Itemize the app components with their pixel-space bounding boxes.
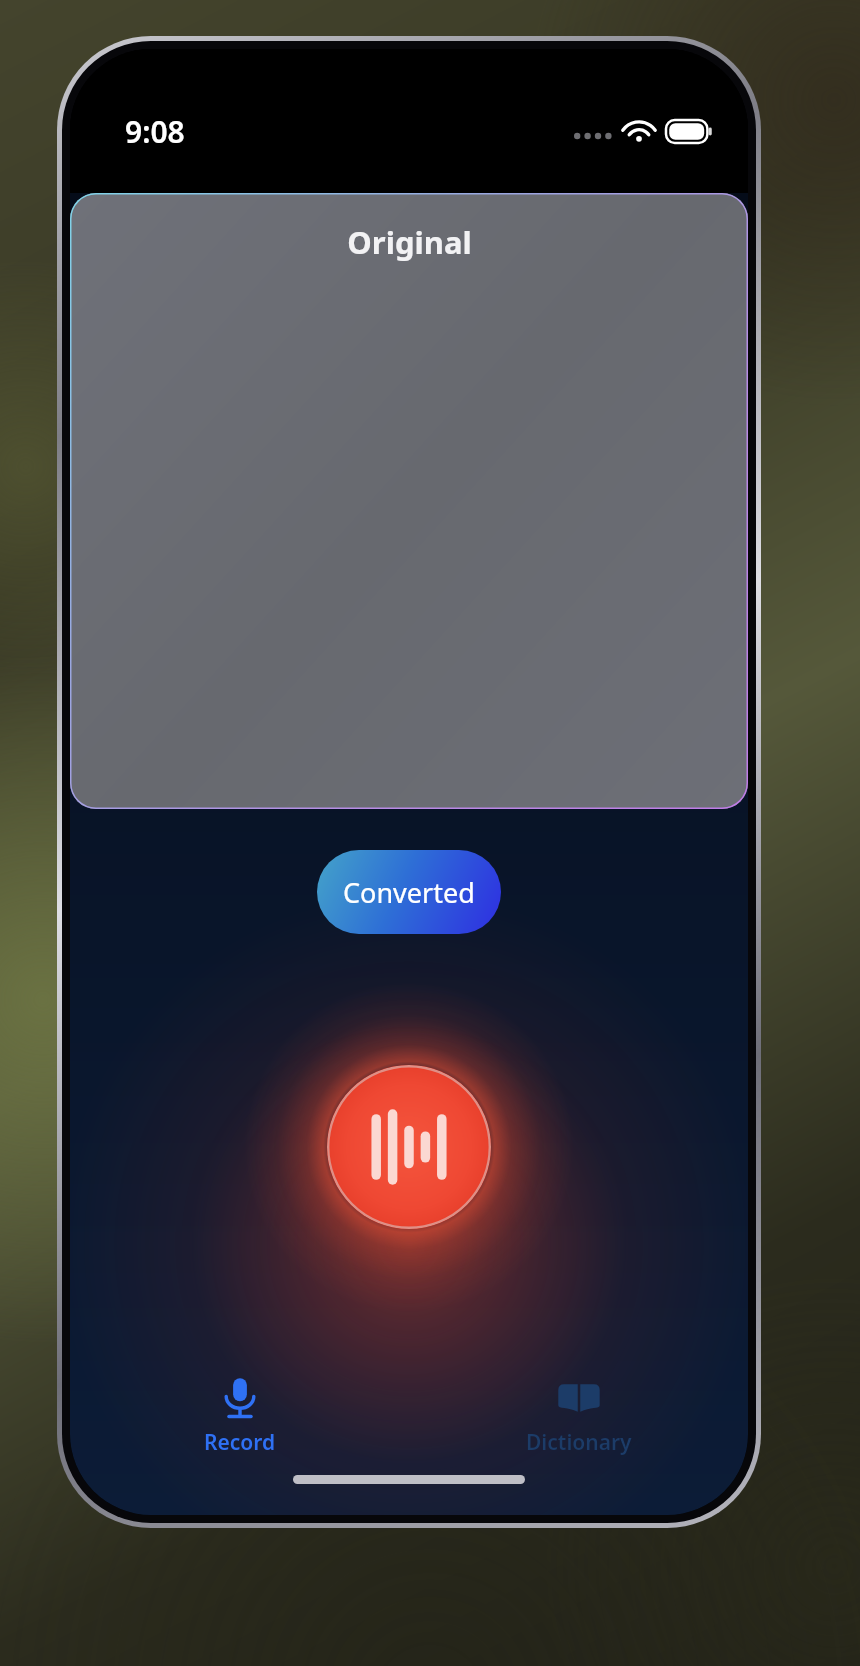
button[interactable]: Converted xyxy=(317,850,501,934)
staticText: 9:08 xyxy=(125,111,185,152)
button[interactable]: Dictionary xyxy=(409,1357,748,1475)
button[interactable]: Record xyxy=(70,1357,409,1475)
staticText: Dictionary xyxy=(526,1428,632,1457)
button[interactable]: Original xyxy=(70,193,748,809)
staticText: Converted xyxy=(343,874,475,911)
staticText: Record xyxy=(204,1428,276,1457)
button[interactable]: Record xyxy=(327,1065,491,1229)
staticText: Original xyxy=(347,221,472,263)
